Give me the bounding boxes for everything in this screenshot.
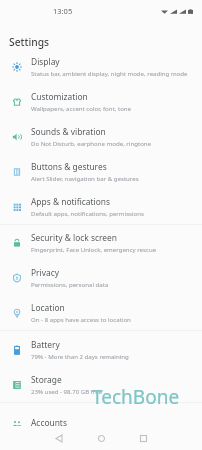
button[interactable]: Customization <box>0 84 202 119</box>
button[interactable]: Recents <box>131 426 155 450</box>
button[interactable]: Location <box>0 295 202 330</box>
staticText: Settings <box>9 35 50 49</box>
staticText: Alert Slider, navigation bar & gestures <box>31 174 139 182</box>
staticText: 23% used - 98.70 GB free <box>31 387 103 395</box>
staticText: Default apps, notifications, permissions <box>31 209 144 217</box>
staticText: Sounds & vibration <box>31 126 106 137</box>
staticText: Storage <box>31 374 62 385</box>
button[interactable]: Display <box>0 49 202 84</box>
staticText: Status bar, ambient display, night mode,… <box>31 69 188 77</box>
staticText: Apps & notifications <box>31 196 110 207</box>
button[interactable]: Storage <box>0 367 202 402</box>
staticText: Location <box>31 302 65 313</box>
button[interactable]: Back <box>47 426 71 450</box>
button[interactable]: Apps & notifications <box>0 189 202 224</box>
staticText: Permissions, personal data <box>31 280 109 288</box>
staticText: Buttons & gestures <box>31 161 107 172</box>
staticText: 13:05 <box>53 6 73 16</box>
staticText: Display <box>31 56 60 67</box>
button[interactable]: Home <box>89 426 113 450</box>
staticText: Fingerprint, Face Unlock, emergency resc… <box>31 245 157 253</box>
button[interactable]: Accounts <box>0 405 202 440</box>
staticText: Privacy <box>31 267 59 278</box>
staticText: 79% - More than 2 days remaining <box>31 352 129 360</box>
staticText: Wallpapers, accent color, font, tone <box>31 104 132 112</box>
staticText: Battery <box>31 339 60 350</box>
staticText: Accounts <box>31 417 67 428</box>
staticText: Do Not Disturb, earphone mode, ringtone <box>31 139 152 147</box>
button[interactable]: Security & lock screen <box>0 225 202 260</box>
button[interactable]: Privacy <box>0 260 202 295</box>
button[interactable]: Buttons & gestures <box>0 154 202 189</box>
button[interactable]: Sounds & vibration <box>0 119 202 154</box>
staticText: Customization <box>31 91 88 102</box>
staticText: Security & lock screen <box>31 232 117 243</box>
button[interactable]: Battery <box>0 332 202 367</box>
staticText: TechBone <box>92 384 180 410</box>
staticText: On - 8 apps have access to location <box>31 315 131 323</box>
